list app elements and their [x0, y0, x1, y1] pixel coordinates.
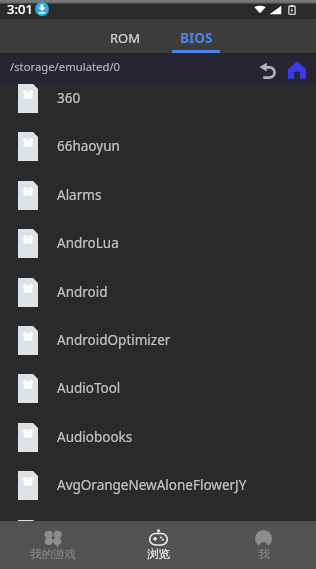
staticText: Android: [57, 283, 108, 301]
button[interactable]: Home: [284, 55, 310, 81]
button[interactable]: Alarms: [0, 171, 316, 219]
staticText: backups: [57, 525, 110, 543]
staticText: Audiobooks: [57, 428, 133, 446]
button[interactable]: AvgOrangeNewAloneFlowerJY: [0, 461, 316, 509]
staticText: BIOS: [180, 29, 213, 47]
button[interactable]: AudioTool: [0, 364, 316, 412]
button[interactable]: 360: [0, 74, 316, 122]
button[interactable]: ROM: [90, 19, 161, 53]
staticText: /storage/emulated/0: [10, 59, 121, 74]
button[interactable]: Audiobooks: [0, 413, 316, 461]
button[interactable]: 66haoyun: [0, 122, 316, 170]
button[interactable]: 我的游戏: [0, 521, 106, 569]
button[interactable]: Back: [254, 55, 280, 81]
staticText: 66haoyun: [57, 137, 120, 155]
staticText: 我: [258, 547, 270, 561]
button[interactable]: backups: [0, 510, 316, 558]
button[interactable]: AndroLua: [0, 219, 316, 267]
staticText: AudioTool: [57, 379, 121, 397]
staticText: 360: [57, 89, 81, 107]
button[interactable]: AndroidOptimizer: [0, 316, 316, 364]
button[interactable]: 浏览: [106, 521, 211, 569]
staticText: Alarms: [57, 186, 102, 204]
button[interactable]: BIOS: [161, 19, 232, 53]
staticText: 3:01: [7, 0, 33, 18]
staticText: AvgOrangeNewAloneFlowerJY: [57, 476, 247, 494]
staticText: ROM: [110, 29, 141, 47]
button[interactable]: 我: [211, 521, 316, 569]
button[interactable]: Android: [0, 268, 316, 316]
staticText: 浏览: [147, 547, 170, 561]
staticText: AndroLua: [57, 234, 119, 252]
staticText: AndroidOptimizer: [57, 331, 171, 349]
staticText: 我的游戏: [30, 547, 76, 561]
